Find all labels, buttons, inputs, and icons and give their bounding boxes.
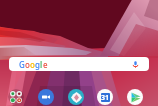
button[interactable]: Apps folder	[8, 89, 24, 105]
staticText: o	[30, 59, 35, 70]
button[interactable]: Meet	[38, 89, 54, 105]
button[interactable]: Calendar	[97, 89, 113, 105]
button[interactable]: Play Store	[127, 89, 143, 105]
staticText: l	[40, 59, 43, 70]
button[interactable]: G	[9, 57, 149, 71]
staticText: e	[43, 59, 48, 70]
button[interactable]: Safety	[68, 89, 84, 105]
staticText: o	[25, 59, 30, 70]
staticText: g	[35, 59, 40, 70]
staticText: 31	[101, 93, 110, 102]
staticText: G	[19, 59, 25, 70]
